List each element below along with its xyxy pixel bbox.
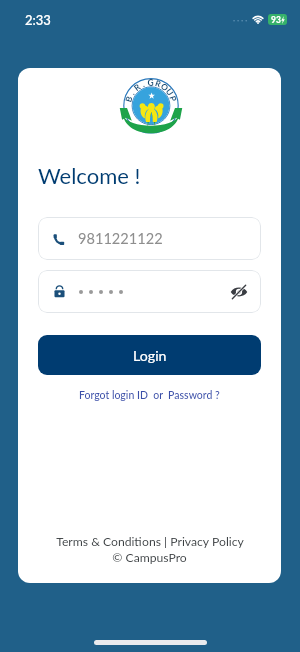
- staticText: Welcome !: [38, 162, 141, 188]
- staticText: 9811221122: [78, 230, 163, 248]
- button[interactable]: Terms & Conditions | Privacy Policy: [56, 534, 244, 549]
- staticText: 2:33: [25, 12, 51, 28]
- button[interactable]: Show password: [228, 281, 250, 303]
- staticText: Terms & Conditions | Privacy Policy: [56, 534, 244, 549]
- button[interactable]: 9811221122: [38, 217, 261, 260]
- button[interactable]: Show password: [38, 270, 261, 313]
- button[interactable]: Login: [38, 335, 261, 375]
- staticText: Login: [133, 347, 167, 364]
- staticText: © CampusPro: [112, 550, 187, 565]
- button[interactable]: Forgot login ID or Password ?: [73, 386, 226, 405]
- staticText: Forgot login ID or Password ?: [79, 389, 220, 402]
- staticText: 93: [271, 15, 281, 25]
